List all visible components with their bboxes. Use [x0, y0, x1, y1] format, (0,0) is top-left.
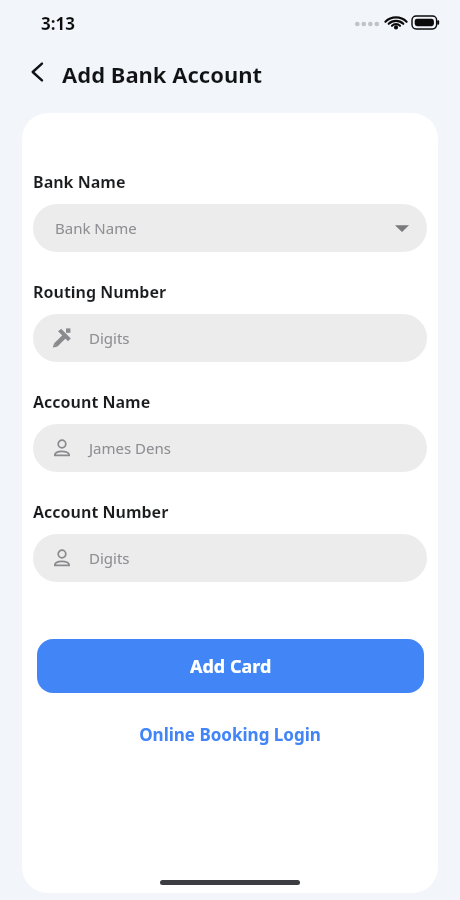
staticText: Online Booking Login	[139, 723, 321, 746]
staticText: Account Name	[33, 391, 151, 413]
staticText: Add Bank Account	[62, 59, 263, 89]
staticText: 3:13	[41, 12, 75, 35]
staticText: Routing Number	[33, 281, 167, 303]
staticText: James Dens	[89, 438, 171, 458]
staticText: Bank Name	[33, 171, 126, 193]
button[interactable]: Digits	[33, 534, 427, 582]
button[interactable]: Bank Name	[33, 204, 427, 252]
button[interactable]: Online Booking Login	[127, 715, 333, 754]
button[interactable]: Back	[14, 48, 62, 96]
staticText: Bank Name	[55, 218, 395, 238]
staticText: Add Card	[190, 654, 272, 679]
staticText: Account Number	[33, 501, 169, 523]
staticText: Digits	[89, 328, 130, 348]
button[interactable]: Digits	[33, 314, 427, 362]
button[interactable]: Add Card	[37, 639, 424, 693]
button[interactable]: James Dens	[33, 424, 427, 472]
staticText: Digits	[89, 548, 130, 568]
